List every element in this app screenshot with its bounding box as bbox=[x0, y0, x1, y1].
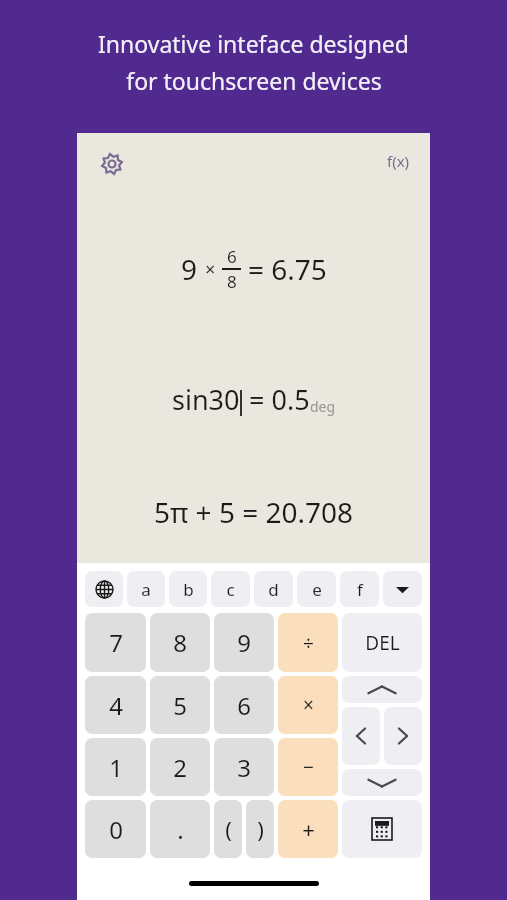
staticText: sin30 bbox=[172, 381, 240, 418]
staticText: 9 bbox=[181, 250, 205, 288]
staticText: 7 bbox=[109, 626, 123, 659]
staticText: 6 bbox=[237, 689, 251, 722]
staticText: 8 bbox=[173, 626, 187, 659]
button[interactable]: Left bbox=[342, 707, 380, 765]
staticText: Innovative inteface designed bbox=[98, 28, 409, 59]
staticText: 3 bbox=[237, 751, 251, 784]
staticText: + bbox=[302, 814, 315, 844]
staticText: − bbox=[303, 754, 314, 780]
button[interactable]: Settings bbox=[95, 147, 129, 181]
button[interactable]: c bbox=[211, 571, 250, 607]
staticText: ) bbox=[257, 814, 264, 844]
staticText: f(x) bbox=[387, 151, 410, 171]
button[interactable]: 1 bbox=[85, 738, 146, 796]
staticText: = 6.75 bbox=[248, 250, 327, 288]
staticText: d bbox=[268, 578, 279, 601]
button[interactable]: Down bbox=[342, 769, 422, 796]
button[interactable]: + bbox=[278, 800, 338, 858]
staticText: c bbox=[226, 578, 235, 601]
button[interactable]: − bbox=[278, 738, 338, 796]
staticText: f bbox=[357, 578, 363, 601]
button[interactable]: 9 bbox=[214, 613, 274, 672]
staticText: × bbox=[303, 692, 314, 718]
button[interactable]: 7 bbox=[85, 613, 146, 672]
staticText: DEL bbox=[365, 630, 400, 656]
staticText: b bbox=[183, 578, 194, 601]
button[interactable]: e bbox=[297, 571, 336, 607]
staticText: 8 bbox=[227, 270, 237, 293]
staticText: ( bbox=[225, 814, 232, 844]
staticText: × bbox=[205, 257, 216, 282]
button[interactable]: 3 bbox=[214, 738, 274, 796]
staticText: 9 bbox=[237, 626, 251, 659]
button[interactable]: b bbox=[169, 571, 207, 607]
staticText: . bbox=[177, 813, 184, 846]
button[interactable]: ÷ bbox=[278, 613, 338, 672]
button[interactable]: 8 bbox=[150, 613, 210, 672]
button[interactable]: 6 bbox=[214, 676, 274, 734]
staticText: for touchscreen devices bbox=[126, 65, 382, 96]
button[interactable]: d bbox=[254, 571, 293, 607]
staticText: 1 bbox=[109, 751, 123, 784]
button[interactable]: Up bbox=[342, 676, 422, 703]
staticText: 2 bbox=[173, 751, 187, 784]
button[interactable]: ) bbox=[246, 800, 274, 858]
staticText: 5 bbox=[173, 689, 187, 722]
staticText: 5π + 5 = 20.708 bbox=[154, 493, 354, 531]
button[interactable]: More bbox=[383, 571, 422, 607]
button[interactable]: ( bbox=[214, 800, 242, 858]
button[interactable]: f(x) bbox=[381, 147, 416, 175]
button[interactable]: 5 bbox=[150, 676, 210, 734]
button[interactable]: × bbox=[278, 676, 338, 734]
button[interactable]: f bbox=[340, 571, 379, 607]
button[interactable]: Calculator bbox=[342, 800, 422, 858]
button[interactable]: 0 bbox=[85, 800, 146, 858]
staticText: ÷ bbox=[303, 630, 314, 656]
staticText: a bbox=[141, 578, 151, 601]
button[interactable]: Right bbox=[384, 707, 422, 765]
button[interactable]: 2 bbox=[150, 738, 210, 796]
staticText: 6 bbox=[227, 245, 237, 268]
staticText: e bbox=[312, 578, 322, 601]
button[interactable]: Language bbox=[85, 571, 123, 607]
button[interactable]: a bbox=[127, 571, 165, 607]
staticText: 0 bbox=[109, 813, 123, 846]
staticText: 4 bbox=[109, 689, 123, 722]
button[interactable]: 4 bbox=[85, 676, 146, 734]
staticText: = 0.5 bbox=[242, 381, 310, 418]
button[interactable]: . bbox=[150, 800, 210, 858]
staticText: deg bbox=[310, 397, 336, 416]
button[interactable]: DEL bbox=[342, 613, 422, 672]
